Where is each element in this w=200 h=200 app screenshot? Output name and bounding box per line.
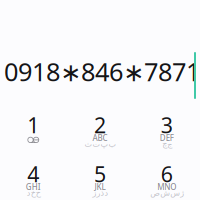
button[interactable]: 4 [0,159,67,200]
staticText: ج‌چ [162,139,172,149]
staticText: 0918∗846∗7871 [4,55,200,88]
staticText: ح‌خ‌د [26,188,40,198]
button[interactable]: 6 [133,159,200,200]
button[interactable]: 3 [133,110,200,156]
staticText: ژ‌س‌ش‌ص [150,188,184,198]
button[interactable]: 2 [67,110,133,156]
staticText: د‌ذ‌ر‌ز [92,188,108,198]
staticText: 2 [94,111,106,139]
staticText: ABC [92,133,107,143]
staticText: MNO [157,182,176,192]
staticText: 1 [27,111,39,139]
button[interactable]: One, voicemail [0,110,67,156]
staticText: 6 [161,160,173,188]
staticText: DEF [160,133,174,143]
staticText: GHI [26,182,41,192]
staticText: JKL [94,182,105,192]
button[interactable]: 5 [67,159,133,200]
staticText: 3 [161,111,173,139]
staticText: 4 [27,160,39,188]
staticText: 5 [94,160,106,188]
staticText: ب‌پ‌ت‌ث [84,139,116,149]
